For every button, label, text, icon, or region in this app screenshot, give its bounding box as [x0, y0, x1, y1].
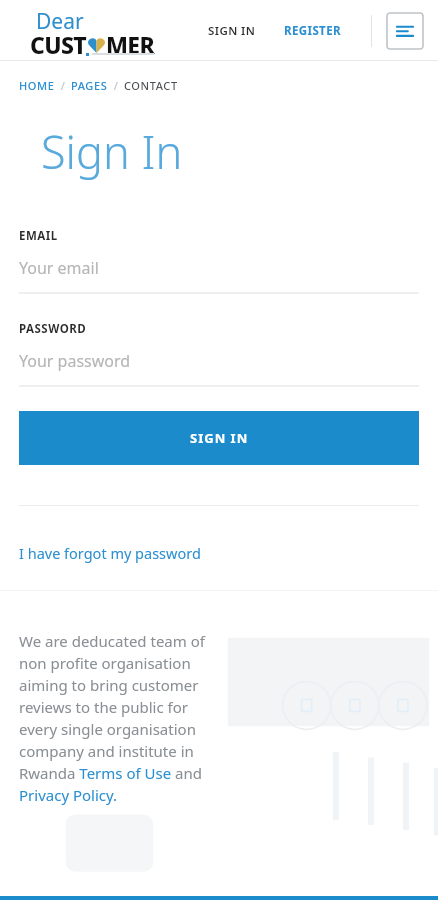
button[interactable]: REGISTER [280, 17, 345, 45]
staticText: HOME [19, 78, 55, 93]
staticText: SIGN IN [208, 23, 256, 39]
staticText: I have forgot my password [19, 543, 201, 563]
staticText: CUST [30, 29, 87, 60]
staticText: REGISTER [284, 23, 341, 39]
staticText: PASSWORD [19, 321, 87, 337]
staticText: Dear [36, 7, 84, 36]
button[interactable]: I have forgot my password [19, 543, 201, 563]
staticText: SIGN IN [190, 429, 249, 447]
staticText: CONTACT [124, 78, 178, 93]
button[interactable]: SIGN IN [19, 411, 419, 465]
staticText: We are deducated team of non profite org… [19, 631, 219, 806]
staticText: PAGES [71, 78, 108, 93]
button[interactable]: SIGN IN [204, 17, 260, 45]
button[interactable]: Your password [19, 350, 419, 387]
staticText: Your password [19, 350, 131, 372]
button[interactable]: Your email [19, 257, 419, 294]
button[interactable]: HOME [19, 78, 55, 93]
staticText: MER [106, 29, 155, 60]
staticText: / [55, 78, 71, 93]
staticText: / [108, 78, 124, 93]
button[interactable]: Open menu [386, 12, 424, 50]
staticText: Sign In [41, 121, 183, 182]
button[interactable]: PAGES [71, 78, 108, 93]
staticText: Your email [19, 257, 99, 279]
staticText: EMAIL [19, 228, 58, 244]
